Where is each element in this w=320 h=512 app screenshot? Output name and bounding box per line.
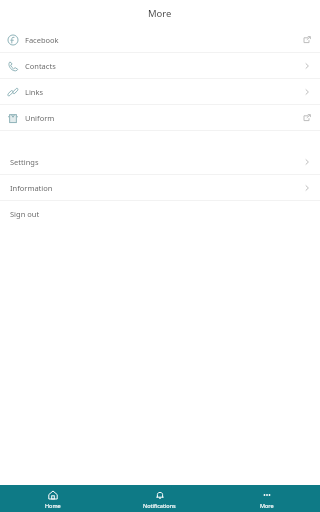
- other: More: [262, 490, 272, 500]
- staticText: Notifications: [143, 502, 176, 508]
- staticText: More: [148, 7, 172, 20]
- button[interactable]: Settings: [0, 149, 320, 174]
- button[interactable]: Information: [0, 175, 320, 200]
- other: Notifications: [155, 490, 165, 500]
- button[interactable]: Links: [0, 79, 320, 104]
- staticText: Contacts: [25, 61, 56, 71]
- button[interactable]: Notifications: [106, 485, 213, 512]
- button[interactable]: Facebook: [0, 27, 320, 52]
- button[interactable]: More: [213, 485, 320, 512]
- staticText: Settings: [10, 157, 39, 167]
- staticText: Information: [10, 183, 53, 193]
- button[interactable]: Uniform: [0, 105, 320, 130]
- button[interactable]: Home: [0, 485, 106, 512]
- staticText: Sign out: [10, 209, 40, 219]
- button[interactable]: Sign out: [0, 201, 320, 226]
- staticText: Home: [45, 502, 61, 508]
- staticText: More: [260, 502, 274, 508]
- staticText: Facebook: [25, 35, 59, 45]
- button[interactable]: Contacts: [0, 53, 320, 78]
- staticText: Uniform: [25, 113, 55, 123]
- other: Home: [48, 490, 58, 500]
- staticText: Links: [25, 87, 44, 97]
